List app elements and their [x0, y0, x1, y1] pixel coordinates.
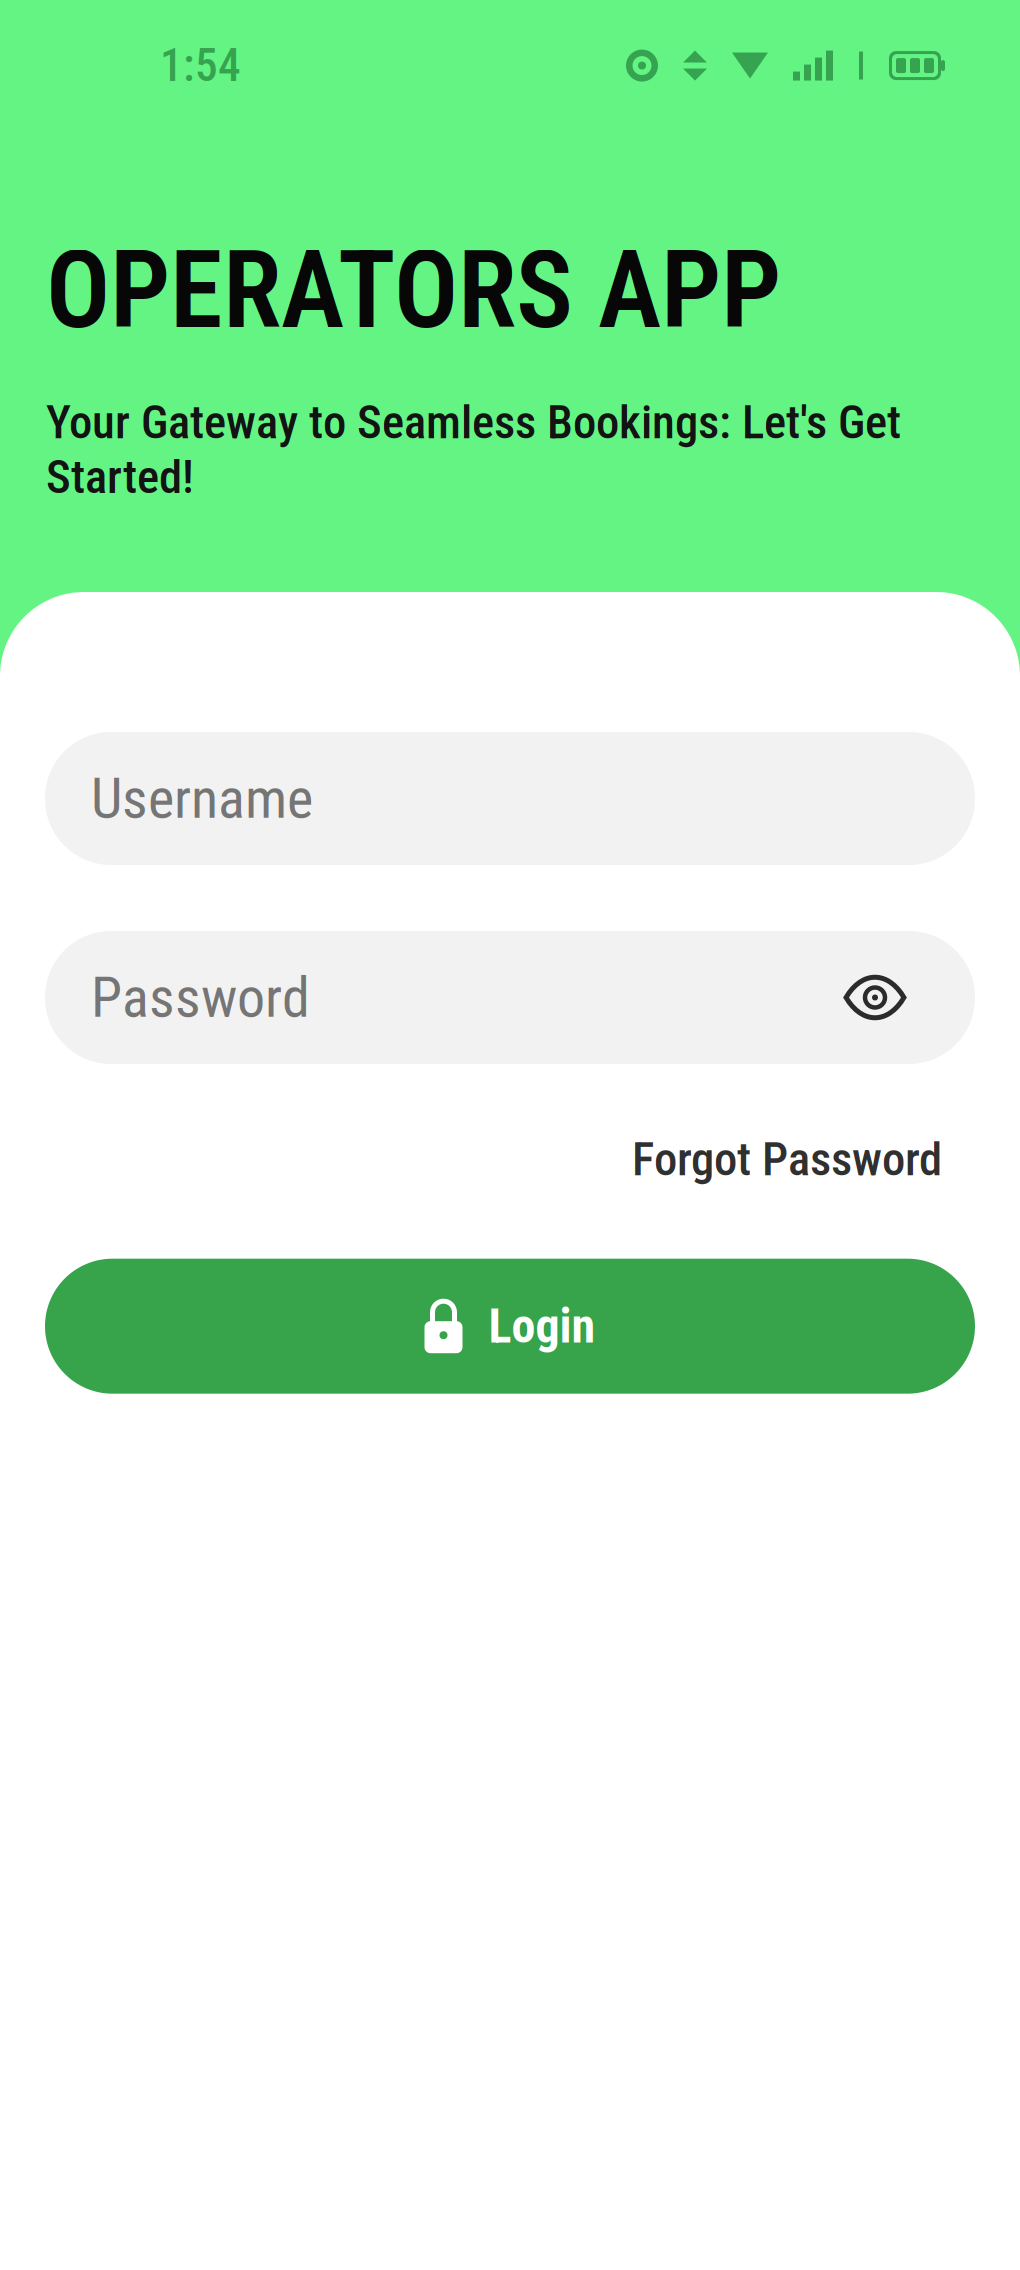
button[interactable]: Login	[45, 1259, 975, 1394]
staticText: Forgot Password	[632, 1132, 942, 1187]
staticText: Login	[488, 1298, 595, 1354]
staticText: Username	[91, 766, 313, 831]
staticText: 1:54	[160, 39, 241, 92]
staticText: OPERATORS APP	[46, 228, 781, 353]
staticText: Password	[91, 965, 310, 1030]
staticText: Your Gateway to Seamless Bookings: Let's…	[46, 395, 901, 504]
button[interactable]: Forgot Password	[626, 1122, 948, 1197]
button[interactable]: Show password	[829, 956, 921, 1038]
button[interactable]: Username	[45, 732, 975, 865]
button[interactable]: Password	[45, 931, 975, 1064]
